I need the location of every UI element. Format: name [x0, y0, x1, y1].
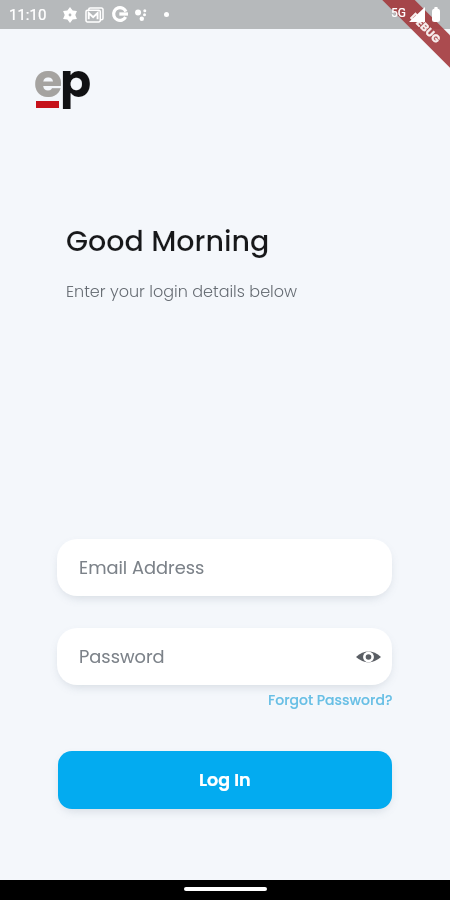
button[interactable]: Log In	[58, 751, 392, 809]
button[interactable]: Password	[57, 628, 392, 685]
staticText: Good Morning	[66, 221, 270, 261]
staticText: 5G	[391, 6, 406, 20]
staticText: Forgot Password?	[268, 690, 393, 710]
staticText: 11:10	[9, 6, 47, 24]
button[interactable]: Show password	[350, 639, 386, 675]
staticText: DEBUG	[407, 9, 445, 46]
staticText: e	[34, 49, 63, 109]
staticText: Email Address	[79, 555, 205, 580]
button[interactable]: Forgot Password?	[268, 690, 393, 710]
staticText: Password	[79, 644, 165, 669]
staticText: p	[60, 49, 92, 109]
button[interactable]: Email Address	[57, 539, 392, 596]
staticText: Enter your login details below	[66, 280, 298, 302]
staticText: Log In	[199, 768, 251, 793]
